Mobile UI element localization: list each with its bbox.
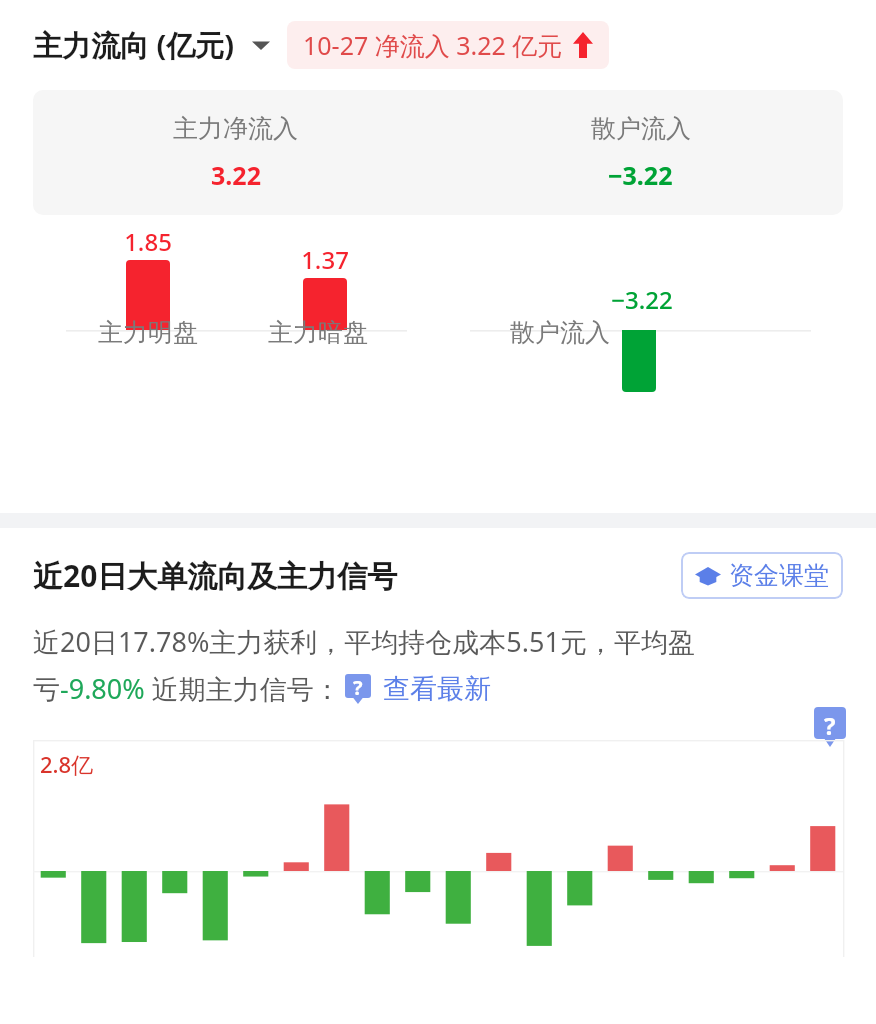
staticText: −3.22 — [611, 283, 673, 316]
staticText: ? — [824, 709, 836, 742]
button[interactable]: 资金课堂 — [681, 552, 843, 599]
button[interactable]: 展开选择 — [247, 31, 275, 59]
button[interactable]: 查看最新 — [383, 672, 491, 706]
staticText: 主力明盘 — [98, 317, 198, 348]
staticText: 亏-9.80% 近期主力信号： — [33, 670, 341, 707]
staticText: 散户流入 — [510, 317, 610, 348]
staticText: 主力流向 (亿元) — [33, 25, 235, 65]
staticText: 1.37 — [301, 243, 349, 276]
staticText: 3.22 — [211, 158, 261, 192]
staticText: 主力净流入 — [173, 113, 298, 144]
staticText: 10-27 净流入 3.22 亿元 — [303, 28, 563, 62]
staticText: 1.85 — [124, 225, 172, 258]
button[interactable]: 图表说明 — [814, 707, 846, 747]
staticText: 近20日大单流向及主力信号 — [33, 555, 398, 596]
staticText: 近20日17.78%主力获利，平均持仓成本5.51元，平均盈 — [33, 623, 695, 660]
staticText: ? — [353, 674, 363, 701]
staticText: 2.8亿 — [40, 749, 94, 779]
staticText: 主力暗盘 — [268, 317, 368, 348]
staticText: −3.22 — [608, 158, 673, 192]
staticText: 散户流入 — [591, 113, 691, 144]
staticText: 资金课堂 — [729, 560, 829, 591]
button[interactable] — [0, 707, 876, 957]
button[interactable]: 10-27 净流入 3.22 亿元 — [287, 21, 609, 69]
button[interactable]: 说明 — [345, 674, 371, 704]
